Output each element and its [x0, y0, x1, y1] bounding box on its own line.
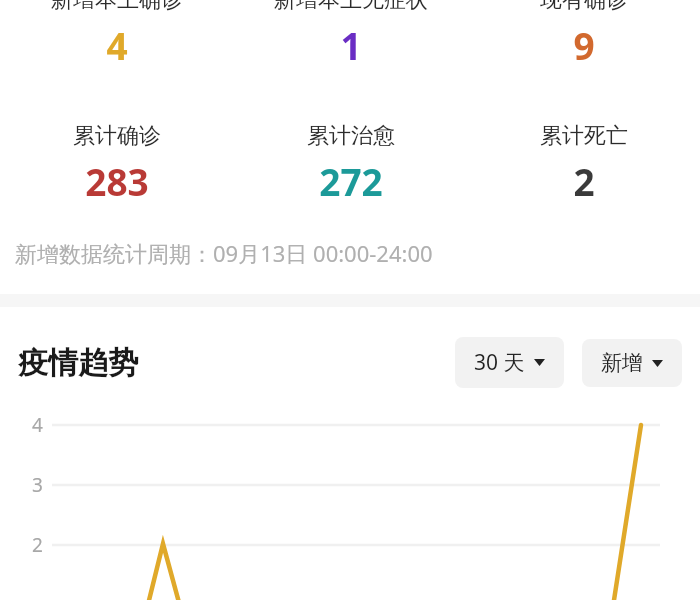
staticText: 283: [85, 156, 149, 206]
staticText: 新增: [601, 350, 643, 376]
button[interactable]: 新增: [582, 339, 682, 387]
staticText: 2: [573, 156, 595, 206]
button[interactable]: 累计治愈: [234, 122, 467, 206]
staticText: 272: [319, 156, 383, 206]
other: Expand 30 天: [534, 359, 545, 366]
staticText: 4: [32, 412, 43, 438]
staticText: 新增本土无症状: [274, 0, 428, 14]
button[interactable]: 新增本土确诊: [0, 0, 234, 60]
staticText: 新增本土确诊: [51, 0, 183, 14]
button[interactable]: 新增本土无症状: [234, 0, 467, 60]
button[interactable]: 现有确诊: [467, 0, 700, 60]
staticText: 4: [106, 20, 128, 60]
button[interactable]: 累计确诊: [0, 122, 234, 206]
staticText: 3: [32, 472, 43, 498]
other: Expand 新增: [652, 360, 663, 367]
staticText: 1: [340, 20, 362, 60]
staticText: 累计治愈: [307, 122, 395, 150]
staticText: 现有确诊: [540, 0, 628, 14]
staticText: 累计确诊: [73, 122, 161, 150]
staticText: 9: [573, 20, 595, 60]
staticText: 累计死亡: [540, 122, 628, 150]
button[interactable]: 累计死亡: [467, 122, 700, 206]
staticText: 新增数据统计周期：09月13日 00:00-24:00: [15, 238, 433, 268]
staticText: 疫情趋势: [18, 344, 138, 382]
staticText: 2: [32, 532, 43, 558]
staticText: 30 天: [474, 348, 525, 377]
button[interactable]: 30 天: [455, 337, 564, 388]
